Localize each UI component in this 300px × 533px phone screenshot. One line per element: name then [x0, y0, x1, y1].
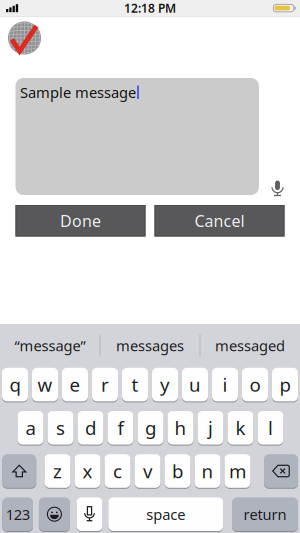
button[interactable]: f: [107, 410, 133, 445]
staticText: z: [53, 459, 62, 483]
button[interactable]: o: [242, 367, 268, 402]
button[interactable]: a: [17, 410, 43, 445]
button[interactable]: Delete: [264, 454, 298, 488]
staticText: d: [85, 415, 96, 440]
staticText: u: [189, 372, 201, 397]
staticText: w: [37, 372, 52, 397]
staticText: x: [82, 459, 92, 483]
staticText: l: [268, 415, 273, 440]
staticText: 123: [6, 504, 30, 524]
button[interactable]: y: [152, 367, 178, 402]
button[interactable]: l: [257, 410, 283, 445]
staticText: h: [174, 415, 186, 440]
button[interactable]: return: [232, 497, 298, 531]
button[interactable]: v: [134, 454, 160, 488]
button[interactable]: Numbers: [2, 497, 33, 531]
staticText: v: [143, 459, 152, 483]
staticText: t: [131, 372, 138, 397]
staticText: q: [9, 372, 20, 397]
button[interactable]: s: [47, 410, 73, 445]
staticText: k: [235, 415, 245, 440]
button[interactable]: i: [212, 367, 238, 402]
staticText: f: [117, 415, 123, 440]
staticText: p: [279, 372, 290, 397]
staticText: i: [222, 372, 227, 397]
button[interactable]: z: [44, 454, 70, 488]
staticText: Sample message: [20, 82, 136, 102]
button[interactable]: n: [194, 454, 220, 488]
staticText: y: [160, 372, 170, 397]
button[interactable]: Done: [15, 205, 145, 236]
button[interactable]: m: [224, 454, 250, 488]
button[interactable]: messaged: [200, 324, 299, 367]
button[interactable]: j: [197, 410, 223, 445]
staticText: a: [25, 415, 35, 440]
staticText: messages: [116, 336, 184, 355]
button[interactable]: q: [2, 367, 28, 402]
button[interactable]: x: [74, 454, 100, 488]
button[interactable]: Shift: [2, 454, 36, 488]
button[interactable]: p: [272, 367, 298, 402]
button[interactable]: c: [104, 454, 130, 488]
staticText: Cancel: [194, 210, 244, 231]
button[interactable]: Cancel: [154, 205, 284, 236]
button[interactable]: g: [137, 410, 163, 445]
button[interactable]: Emoji: [39, 497, 70, 531]
button[interactable]: “message”: [0, 324, 99, 367]
staticText: “message”: [14, 336, 85, 355]
staticText: n: [201, 459, 213, 483]
button[interactable]: space: [108, 497, 223, 531]
button[interactable]: u: [182, 367, 208, 402]
button[interactable]: d: [77, 410, 103, 445]
staticText: Done: [60, 210, 101, 231]
staticText: j: [208, 415, 213, 440]
staticText: o: [249, 372, 260, 397]
button[interactable]: b: [164, 454, 190, 488]
staticText: c: [113, 459, 122, 483]
button[interactable]: w: [32, 367, 58, 402]
button[interactable]: t: [122, 367, 148, 402]
button[interactable]: h: [167, 410, 193, 445]
button[interactable]: messages: [100, 324, 199, 367]
staticText: b: [172, 459, 183, 483]
staticText: 12:18 PM: [124, 0, 176, 16]
staticText: s: [56, 415, 65, 440]
button[interactable]: e: [62, 367, 88, 402]
staticText: m: [229, 459, 246, 483]
button[interactable]: Dictate: [267, 176, 287, 200]
button[interactable]: Dictation: [76, 497, 102, 531]
staticText: messaged: [215, 336, 285, 355]
button[interactable]: k: [227, 410, 253, 445]
button[interactable]: r: [92, 367, 118, 402]
staticText: g: [145, 415, 156, 440]
staticText: e: [69, 372, 80, 397]
staticText: r: [101, 372, 109, 397]
staticText: return: [243, 504, 286, 524]
button[interactable]: Sample message: [15, 78, 259, 195]
staticText: space: [146, 504, 185, 524]
